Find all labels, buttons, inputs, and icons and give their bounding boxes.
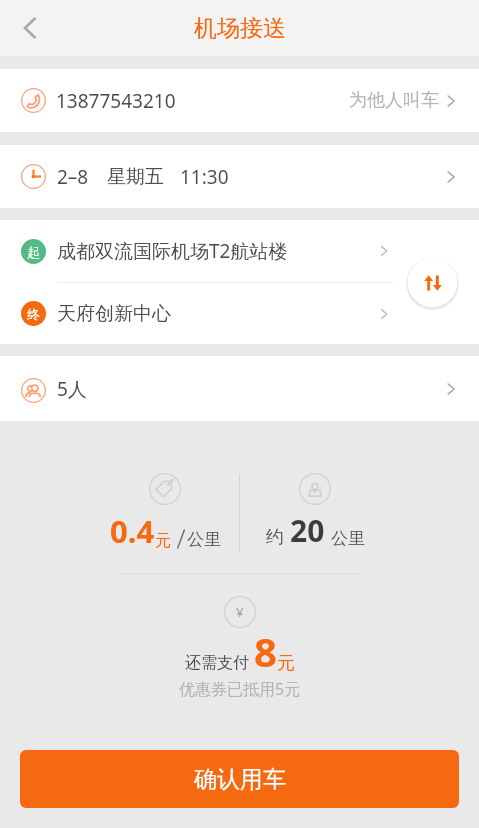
staticText: 起 bbox=[27, 244, 40, 260]
staticText: 星期五 bbox=[107, 165, 164, 189]
staticText: 为他人叫车 bbox=[349, 89, 439, 112]
staticText: 还需支付 bbox=[185, 653, 249, 673]
staticText: 2–8 bbox=[57, 164, 89, 190]
button[interactable]: 5人 bbox=[0, 356, 479, 421]
staticText: 8 bbox=[254, 624, 277, 678]
staticText: 公里 bbox=[187, 529, 221, 550]
staticText: 0.4 bbox=[110, 510, 155, 552]
staticText: 成都双流国际机场T2航站楼 bbox=[57, 238, 288, 264]
button[interactable]: Swap origin and destination bbox=[406, 256, 459, 309]
button[interactable]: 确认用车 bbox=[20, 750, 459, 808]
staticText: 元 bbox=[277, 652, 295, 675]
button[interactable]: 2–8 bbox=[0, 145, 479, 208]
staticText: 公里 bbox=[331, 528, 365, 549]
staticText: 约 bbox=[266, 526, 284, 549]
staticText: 13877543210 bbox=[56, 88, 176, 114]
button[interactable]: 约 bbox=[240, 473, 390, 551]
staticText: 5人 bbox=[57, 376, 87, 402]
button[interactable]: Back bbox=[7, 5, 53, 51]
button[interactable]: 起 bbox=[0, 220, 479, 282]
staticText: 11:30 bbox=[180, 164, 229, 190]
button[interactable]: 0.4 bbox=[90, 473, 240, 552]
button[interactable]: 终 bbox=[0, 283, 479, 344]
staticText: 终 bbox=[27, 306, 40, 322]
staticText: 元 bbox=[155, 531, 171, 551]
staticText: 确认用车 bbox=[194, 765, 286, 794]
button[interactable]: 13877543210 bbox=[0, 69, 479, 132]
staticText: 天府创新中心 bbox=[57, 302, 171, 326]
staticText: 20 bbox=[290, 510, 325, 551]
staticText: 机场接送 bbox=[194, 14, 286, 43]
staticText: 优惠券已抵用5元 bbox=[179, 678, 301, 700]
staticText: ¥ bbox=[236, 603, 244, 621]
